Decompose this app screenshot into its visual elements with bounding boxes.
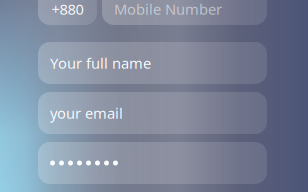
- staticText: +880: [51, 0, 83, 19]
- button[interactable]: Password: [38, 142, 267, 184]
- staticText: Mobile Number: [114, 0, 222, 19]
- staticText: your email: [50, 103, 123, 123]
- button[interactable]: your email: [38, 92, 267, 134]
- staticText: Your full name: [50, 53, 151, 73]
- button[interactable]: Mobile Number: [102, 0, 267, 25]
- button[interactable]: Your full name: [38, 42, 267, 84]
- button[interactable]: +880: [38, 0, 97, 25]
